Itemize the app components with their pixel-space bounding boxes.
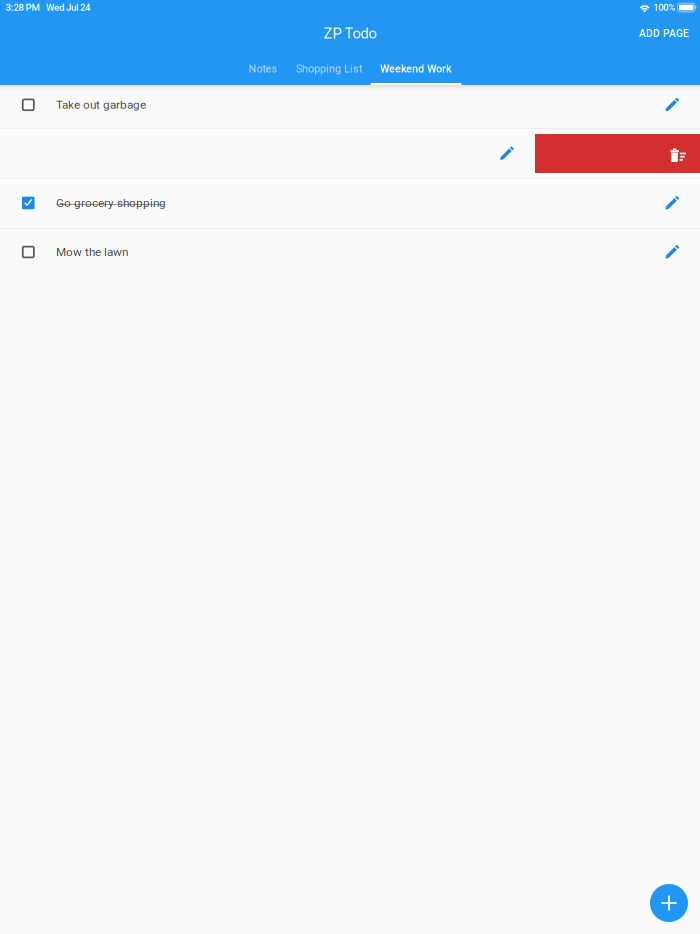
button[interactable]: Take out garbage xyxy=(0,85,700,128)
button[interactable]: Add item xyxy=(650,884,688,922)
staticText: 100% xyxy=(653,2,675,13)
staticText: Weekend Work xyxy=(380,62,452,75)
button[interactable]: Mark Take out garbage complete xyxy=(0,85,50,128)
button[interactable]: Weekend Work xyxy=(370,52,461,85)
staticText: Take out garbage xyxy=(56,98,146,112)
button[interactable]: Delete xyxy=(535,134,700,173)
button[interactable]: Edit Mow the lawn xyxy=(651,229,700,278)
button[interactable]: Notes xyxy=(238,52,287,85)
button[interactable]: Edit xyxy=(486,129,535,178)
button[interactable]: Go grocery shopping xyxy=(0,179,700,228)
staticText: ADD PAGE xyxy=(639,28,689,39)
button[interactable]: Edit Go grocery shopping xyxy=(651,179,700,228)
staticText: Notes xyxy=(248,62,277,75)
staticText: Go grocery shopping xyxy=(56,196,166,210)
button[interactable]: Mow the lawn xyxy=(0,229,700,278)
button[interactable]: Edit Take out garbage xyxy=(651,85,700,128)
button[interactable]: Shopping List xyxy=(287,52,370,85)
button[interactable]: Mark Go grocery shopping incomplete xyxy=(0,179,50,228)
button[interactable]: Mark Mow the lawn complete xyxy=(0,229,50,278)
button[interactable]: ADD PAGE xyxy=(627,15,700,52)
staticText: Mow the lawn xyxy=(56,245,128,259)
staticText: Shopping List xyxy=(296,62,362,75)
staticText: 3:28 PM xyxy=(5,2,39,13)
staticText: Wed Jul 24 xyxy=(46,2,90,13)
staticText: ZP Todo xyxy=(323,25,376,42)
